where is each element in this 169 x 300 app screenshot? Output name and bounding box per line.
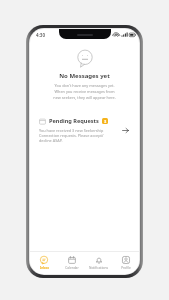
staticText: Pending Requests: [49, 117, 99, 125]
button[interactable]: Pending Requests: [30, 114, 139, 146]
staticText: You don't have any messages yet. When yo…: [52, 83, 117, 100]
staticText: 4:30: [36, 32, 45, 38]
staticText: Profile: [121, 266, 131, 270]
staticText: 3: [104, 119, 107, 124]
button[interactable]: Calendar: [58, 252, 85, 274]
staticText: Notifications: [89, 266, 108, 270]
button[interactable]: View pending requests: [120, 125, 130, 135]
staticText: Calendar: [65, 266, 79, 270]
button[interactable]: Profile: [112, 252, 139, 274]
staticText: Inbox: [40, 266, 49, 270]
button[interactable]: Notifications: [85, 252, 112, 274]
button[interactable]: Inbox: [30, 252, 58, 274]
staticText: No Messages yet: [59, 72, 110, 80]
staticText: You have received 3 new Seekership Conne…: [39, 128, 116, 143]
